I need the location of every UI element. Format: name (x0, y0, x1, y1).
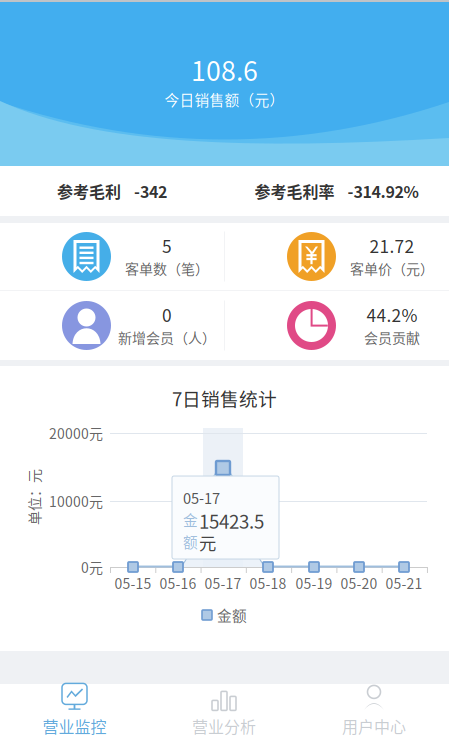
staticText: 营业监控 (42, 714, 106, 737)
staticText: 参考毛利率 (254, 179, 334, 203)
staticText: 元 (199, 530, 216, 555)
staticText: 0元 (81, 557, 103, 577)
staticText: 额 (183, 531, 198, 552)
staticText: 金 (183, 509, 198, 530)
staticText: 金额 (217, 604, 247, 626)
staticText: 参考毛利 (57, 179, 121, 203)
staticText: 用户中心 (342, 714, 406, 737)
staticText: 营业分析 (192, 714, 256, 737)
staticText: 新增会员（人） (118, 327, 216, 347)
staticText: 05-20 (340, 573, 377, 593)
staticText: 05-18 (249, 573, 286, 593)
staticText: 05-19 (295, 573, 332, 593)
staticText: 单位：元 (6, 487, 62, 507)
staticText: 108.6 (191, 50, 258, 89)
staticText: -314.92% (347, 179, 418, 203)
staticText: 05-17 (183, 487, 220, 508)
staticText: 客单价（元） (350, 258, 434, 278)
staticText: 15423.5 (199, 507, 264, 534)
staticText: 10000元 (49, 491, 103, 511)
staticText: 会员贡献 (364, 327, 420, 347)
staticText: 44.2% (366, 302, 417, 327)
staticText: 0 (162, 302, 172, 327)
staticText: 05-17 (204, 573, 241, 593)
staticText: 5 (162, 233, 172, 258)
staticText: 7日销售统计 (172, 384, 277, 411)
staticText: 05-15 (114, 573, 151, 593)
staticText: 今日销售额（元） (164, 89, 284, 110)
button[interactable]: 营业监控 (0, 684, 149, 737)
staticText: 05-21 (385, 573, 422, 593)
staticText: 20000元 (49, 423, 103, 443)
staticText: 21.72 (369, 233, 414, 258)
staticText: -342 (134, 179, 167, 203)
button[interactable]: 用户中心 (299, 684, 449, 737)
staticText: 客单数（笔） (125, 258, 209, 278)
button[interactable]: 营业分析 (149, 684, 299, 737)
staticText: 05-16 (159, 573, 196, 593)
